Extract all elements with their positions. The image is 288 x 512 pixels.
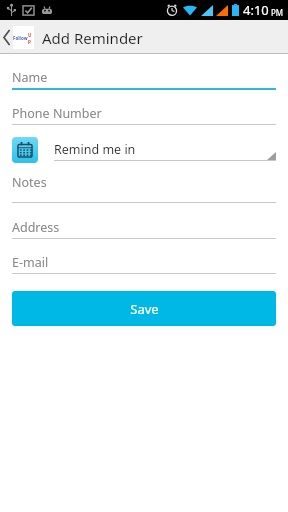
staticText: Up [28,32,34,44]
staticText: Remind me in [54,141,136,158]
button[interactable]: Address [12,217,276,239]
button[interactable]: Phone Number [12,103,276,125]
staticText: Add Reminder [42,28,143,48]
staticText: E-mail [12,254,49,271]
button[interactable]: Remind me in [54,139,276,161]
staticText: Phone Number [12,105,102,122]
staticText: Notes [12,174,47,191]
button[interactable]: E-mail [12,252,276,274]
staticText: 4:10 [243,1,269,19]
staticText: Follow [13,35,28,41]
button[interactable]: Notes [12,174,276,203]
button[interactable]: Navigate up [0,23,38,52]
button[interactable]: Pick date [12,137,38,163]
button[interactable]: Name [12,67,276,90]
staticText: Save [130,300,159,318]
staticText: Name [12,69,48,86]
staticText: Address [12,219,60,236]
staticText: PM [271,7,284,18]
button[interactable]: Save [12,291,276,326]
